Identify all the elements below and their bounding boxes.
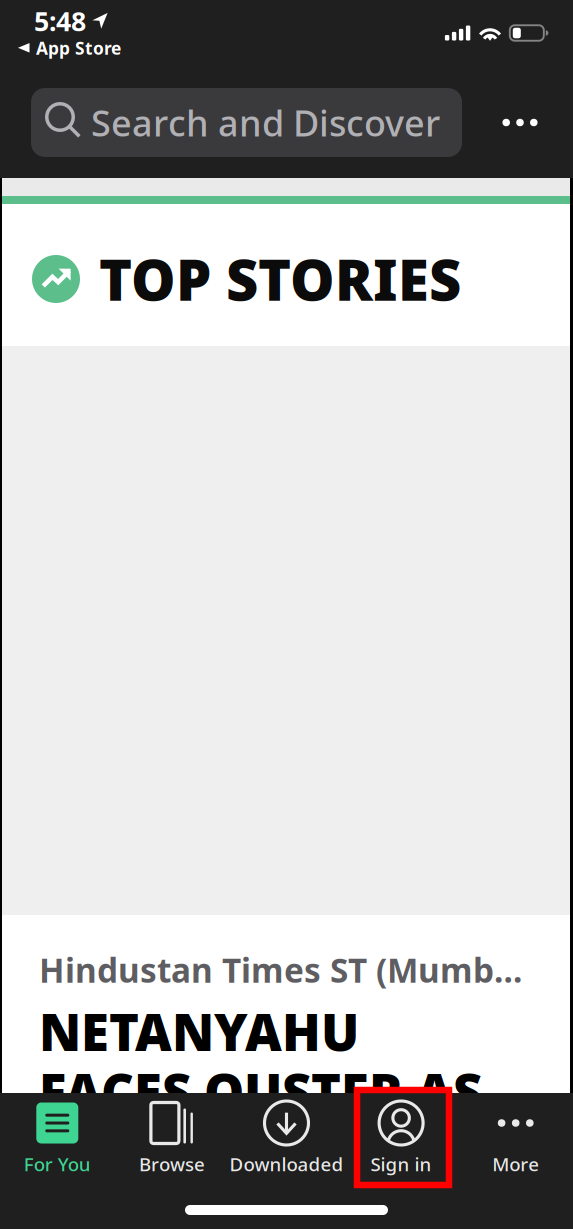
staticText: Sign in bbox=[371, 1152, 432, 1176]
staticText: NETANYAHU bbox=[39, 998, 359, 1065]
staticText: App Store bbox=[36, 36, 121, 59]
button[interactable]: For You bbox=[0, 1093, 115, 1186]
staticText: Search and Discover bbox=[91, 99, 440, 146]
button[interactable]: Downloaded bbox=[229, 1093, 344, 1186]
staticText: Hindustan Times ST (Mumb… bbox=[39, 948, 523, 992]
button[interactable]: Browse bbox=[115, 1093, 229, 1186]
staticText: For You bbox=[24, 1152, 91, 1176]
staticText: Downloaded bbox=[229, 1152, 343, 1176]
staticText: FACES OUSTER AS bbox=[39, 1058, 482, 1125]
button[interactable]: More options bbox=[484, 88, 556, 157]
staticText: TOP STORIES bbox=[99, 242, 461, 316]
staticText: More bbox=[492, 1152, 539, 1176]
button[interactable]: Sign in bbox=[344, 1093, 458, 1186]
button[interactable]: Search and Discover bbox=[31, 88, 462, 157]
button[interactable]: More bbox=[458, 1093, 573, 1186]
staticText: Browse bbox=[139, 1152, 205, 1176]
staticText: 5:48 bbox=[34, 3, 86, 39]
